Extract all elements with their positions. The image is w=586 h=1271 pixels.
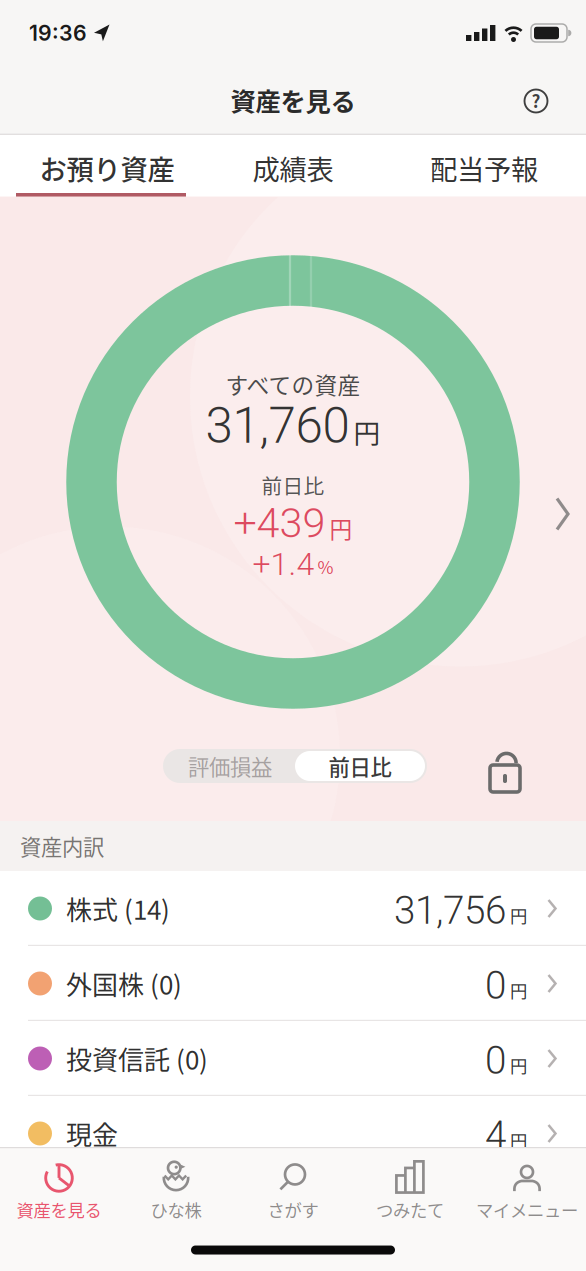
staticText: 資産内訳: [20, 831, 104, 861]
staticText: 19:36: [29, 20, 87, 46]
staticText: 投資信託 (0): [66, 1040, 208, 1077]
button[interactable]: ひな株: [117, 1157, 234, 1225]
staticText: 円: [329, 512, 352, 544]
staticText: 円: [510, 1127, 527, 1153]
staticText: お預り資産: [39, 148, 174, 188]
staticText: マイメニュー: [476, 1197, 578, 1222]
staticText: 円: [353, 413, 380, 451]
staticText: 配当予報: [430, 148, 538, 188]
staticText: %: [317, 554, 333, 579]
button[interactable]: 株式 (14): [0, 871, 586, 946]
staticText: 成績表: [252, 148, 333, 188]
button[interactable]: 評価損益: [163, 749, 427, 783]
staticText: +439: [233, 499, 325, 547]
button[interactable]: 配当予報: [430, 148, 538, 188]
button[interactable]: 資産を見る: [0, 1157, 117, 1225]
staticText: 現金: [66, 1115, 118, 1152]
staticText: 前日比: [328, 751, 391, 781]
staticText: ひな株: [150, 1197, 201, 1222]
staticText: 31,756: [394, 888, 506, 933]
staticText: 円: [510, 902, 527, 928]
staticText: 資産を見る: [16, 1197, 101, 1222]
staticText: 前日比: [261, 470, 324, 500]
staticText: 0: [485, 1038, 506, 1083]
staticText: 31,760: [205, 397, 349, 455]
staticText: 株式 (14): [66, 890, 170, 927]
staticText: 円: [510, 977, 527, 1003]
button[interactable]: つみたて: [351, 1157, 468, 1225]
staticText: 資産を見る: [230, 82, 355, 118]
staticText: ?: [531, 88, 540, 113]
button[interactable]: お預り資産: [39, 148, 174, 188]
button[interactable]: Next chart: [555, 496, 571, 531]
staticText: +1.4: [252, 545, 314, 583]
button[interactable]: さがす: [234, 1157, 351, 1225]
button[interactable]: 成績表: [252, 148, 333, 188]
button[interactable]: 投資信託 (0): [0, 1021, 586, 1096]
staticText: 0: [485, 963, 506, 1008]
staticText: すべての資産: [225, 368, 360, 400]
button[interactable]: 現金: [0, 1096, 586, 1171]
button[interactable]: Lock: [489, 749, 523, 793]
staticText: 4: [485, 1113, 506, 1158]
staticText: さがす: [267, 1197, 318, 1222]
button[interactable]: 外国株 (0): [0, 946, 586, 1021]
staticText: 外国株 (0): [66, 965, 182, 1002]
staticText: 評価損益: [188, 751, 272, 781]
staticText: 円: [510, 1052, 527, 1078]
staticText: つみたて: [376, 1197, 444, 1222]
button[interactable]: マイメニュー: [468, 1157, 585, 1225]
button[interactable]: Help: [523, 88, 548, 113]
